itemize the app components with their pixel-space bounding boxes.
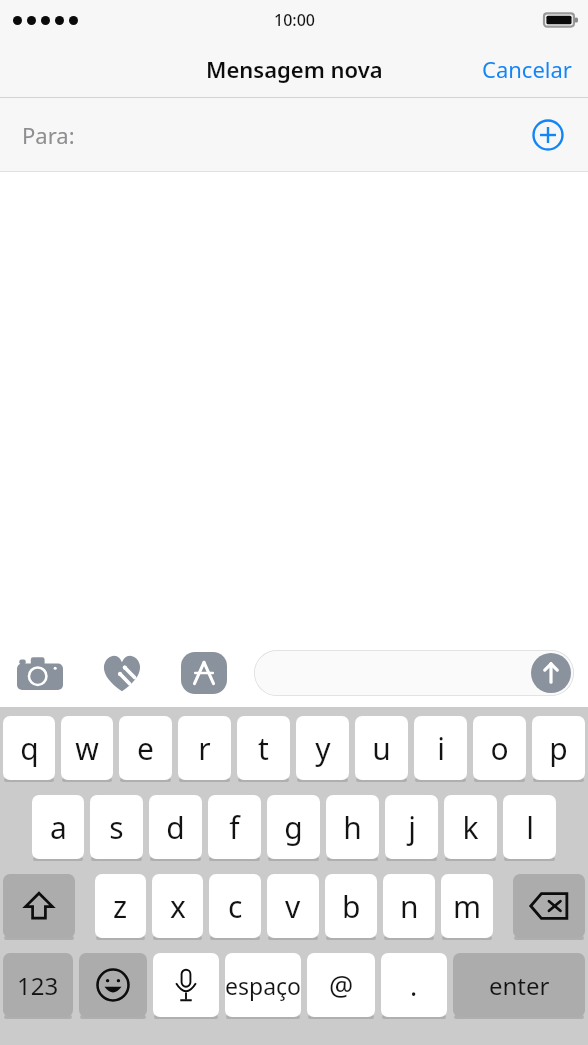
button[interactable]: Digital Touch [96,647,148,699]
button[interactable]: a [32,795,84,861]
staticText: l [526,807,534,848]
staticText: k [462,807,479,848]
staticText: d [166,807,185,848]
staticText: Cancelar [482,54,572,84]
staticText: v [285,886,301,927]
button[interactable]: Shift [3,874,75,940]
button[interactable]: Câmera [14,647,66,699]
staticText: espaço [225,970,301,1001]
button[interactable]: Ditado [153,953,219,1019]
staticText: Para: [22,120,75,150]
button[interactable]: n [383,874,435,940]
staticText: p [549,728,568,769]
staticText: q [20,728,39,769]
staticText: . [410,967,418,1004]
staticText: b [342,886,361,927]
button[interactable]: r [178,716,231,782]
button[interactable]: v [267,874,319,940]
staticText: x [170,886,186,927]
staticText: enter [489,969,550,1002]
button[interactable]: q [3,716,55,782]
button[interactable]: App Store [178,647,230,699]
staticText: h [343,807,362,848]
staticText: z [113,886,128,927]
button[interactable]: 123 [3,953,73,1019]
button[interactable]: d [149,795,202,861]
button[interactable]: x [152,874,203,940]
staticText: g [284,807,303,848]
staticText: t [258,728,269,769]
staticText: c [228,886,243,927]
staticText: y [315,728,331,769]
button[interactable]: m [441,874,493,940]
button[interactable]: @ [307,953,375,1019]
button[interactable]: Enviar [254,650,574,696]
button[interactable]: s [90,795,143,861]
button[interactable]: Enviar [531,653,571,693]
staticText: i [437,728,445,769]
button[interactable]: espaço [225,953,301,1019]
staticText: @ [329,967,354,1004]
staticText: u [372,728,391,769]
staticText: j [408,807,416,848]
button[interactable]: l [503,795,556,861]
button[interactable]: j [385,795,438,861]
button[interactable]: enter [453,953,585,1019]
staticText: s [109,807,124,848]
staticText: Mensagem nova [206,54,383,84]
button[interactable]: g [267,795,320,861]
button[interactable]: Apagar [513,874,585,940]
button[interactable]: Adicionar contato [528,115,568,155]
button[interactable]: y [296,716,349,782]
button[interactable]: Emoji [79,953,147,1019]
staticText: 10:00 [274,9,315,31]
button[interactable]: e [119,716,172,782]
button[interactable]: Cancelar [466,46,588,92]
button[interactable]: k [444,795,497,861]
staticText: r [198,728,211,769]
staticText: f [229,807,240,848]
staticText: n [400,886,419,927]
button[interactable]: p [532,716,585,782]
staticText: o [490,728,509,769]
button[interactable]: t [237,716,290,782]
button[interactable]: o [473,716,526,782]
staticText: 123 [17,969,59,1002]
button[interactable]: z [95,874,146,940]
button[interactable]: u [355,716,408,782]
staticText: a [50,807,67,848]
button[interactable]: f [208,795,261,861]
button[interactable]: b [325,874,377,940]
staticText: w [75,728,99,769]
staticText: e [137,728,154,769]
button[interactable]: w [61,716,113,782]
button[interactable]: c [209,874,261,940]
button[interactable]: i [414,716,467,782]
button[interactable]: . [381,953,447,1019]
staticText: m [453,886,482,927]
button[interactable]: h [326,795,379,861]
